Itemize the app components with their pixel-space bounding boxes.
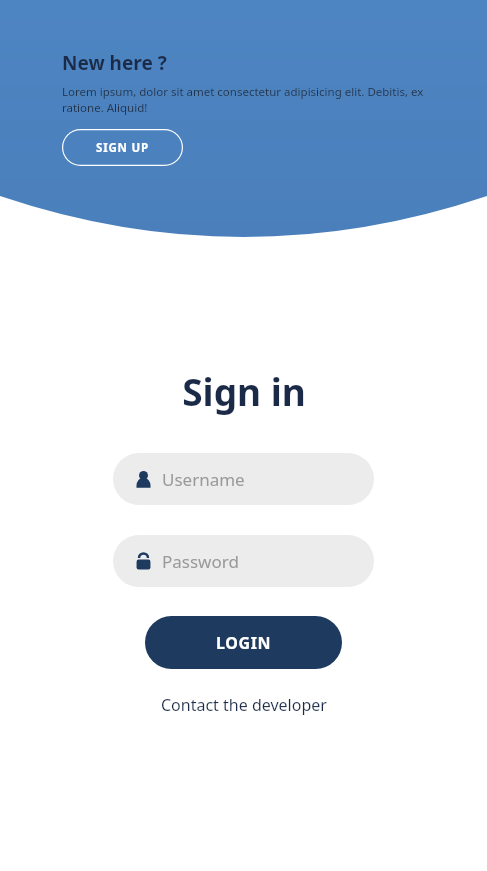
button[interactable]: SIGN UP — [62, 129, 183, 166]
button[interactable]: Username — [113, 453, 374, 505]
staticText: Password — [162, 550, 239, 573]
button[interactable]: LOGIN — [145, 616, 342, 669]
staticText: Contact the developer — [161, 694, 327, 716]
staticText: New here ? — [62, 50, 167, 76]
button[interactable]: Contact the developer — [155, 691, 333, 719]
other: Username — [134, 470, 153, 489]
staticText: Username — [162, 468, 245, 491]
staticText: Sign in — [182, 366, 306, 416]
staticText: Lorem ipsum, dolor sit amet consectetur … — [62, 84, 447, 115]
button[interactable]: Password — [113, 535, 374, 587]
staticText: SIGN UP — [96, 140, 149, 156]
other: Password — [134, 552, 153, 571]
staticText: LOGIN — [216, 632, 272, 654]
